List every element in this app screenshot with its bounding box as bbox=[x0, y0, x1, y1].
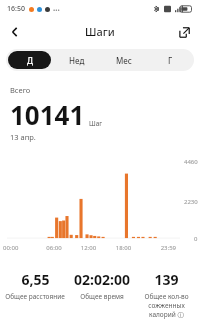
staticText: 4460 bbox=[184, 158, 198, 166]
staticText: 6,55 bbox=[21, 270, 50, 289]
button[interactable]: Мес bbox=[102, 51, 145, 69]
button[interactable]: Share bbox=[173, 21, 195, 43]
staticText: 139 bbox=[154, 270, 179, 289]
button[interactable]: 139 bbox=[136, 270, 197, 319]
button[interactable]: Back bbox=[3, 20, 27, 44]
staticText: 02:02:00 bbox=[74, 270, 130, 289]
staticText: ··· bbox=[53, 4, 60, 15]
staticText: Шаг bbox=[89, 119, 103, 128]
staticText: Всего bbox=[10, 85, 31, 95]
button[interactable]: Нед bbox=[55, 51, 98, 69]
staticText: 10141 bbox=[10, 97, 85, 132]
staticText: Шаги bbox=[85, 24, 115, 39]
staticText: 2230 bbox=[184, 198, 198, 206]
staticText: 00:00 bbox=[3, 244, 37, 252]
staticText: Общее расстояние bbox=[5, 292, 65, 301]
staticText: Общее кол-во сожженных калорий ⓘ bbox=[137, 292, 196, 319]
button[interactable]: Г bbox=[149, 51, 192, 69]
staticText: 0 bbox=[194, 235, 198, 243]
staticText: Общее время bbox=[80, 292, 124, 301]
staticText: 16:50 bbox=[7, 4, 25, 14]
staticText: 18:00 bbox=[106, 244, 141, 252]
staticText: Мес bbox=[116, 55, 132, 66]
staticText: Г bbox=[168, 55, 173, 66]
staticText: 23:59 bbox=[141, 244, 176, 252]
staticText: 13 апр. bbox=[10, 132, 36, 142]
button[interactable]: 02:02:00 bbox=[67, 270, 136, 301]
button[interactable]: 6,55 bbox=[3, 270, 67, 301]
staticText: 12:00 bbox=[71, 244, 106, 252]
staticText: Д bbox=[27, 55, 33, 66]
button[interactable]: Д bbox=[8, 51, 51, 69]
staticText: Нед bbox=[69, 55, 85, 66]
staticText: 06:00 bbox=[37, 244, 71, 252]
